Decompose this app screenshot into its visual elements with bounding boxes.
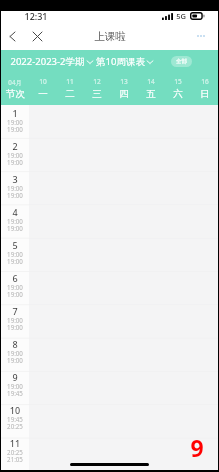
staticText: 14 (147, 77, 155, 86)
staticText: 20:25 21:05 (1, 448, 29, 463)
staticText: 9 (190, 432, 204, 463)
button[interactable]: 11 (1, 435, 29, 468)
staticText: 4 (1, 206, 29, 218)
button[interactable]: 13 (110, 72, 137, 105)
button[interactable]: 5 (1, 237, 29, 270)
staticText: 四 (119, 88, 129, 100)
button[interactable]: 11 (56, 72, 83, 105)
staticText: 3 (1, 173, 29, 185)
staticText: 第10周课表 (96, 55, 145, 68)
staticText: 8 (1, 338, 29, 350)
button[interactable]: 12 (83, 72, 110, 105)
staticText: 19:00 19:00 (1, 349, 29, 364)
button[interactable]: 全部 (171, 56, 192, 67)
staticText: 全部 (176, 58, 187, 65)
staticText: 5 (1, 239, 29, 251)
button[interactable]: 16 (191, 72, 218, 105)
staticText: 16 (201, 77, 209, 86)
staticText: 节次 (6, 88, 25, 100)
staticText: 二 (65, 88, 75, 100)
staticText: 19:00 19:00 (1, 118, 29, 133)
staticText: 19:45 20:25 (1, 415, 29, 430)
staticText: 19:00 19:00 (1, 283, 29, 298)
staticText: 1 (1, 107, 29, 119)
staticText: 上课啦 (94, 30, 126, 43)
staticText: 19:00 19:45 (1, 382, 29, 397)
button[interactable]: 7 (1, 303, 29, 336)
button[interactable]: More options (193, 28, 209, 44)
staticText: 2 (1, 140, 29, 152)
button[interactable]: 4 (1, 204, 29, 237)
staticText: 2022-2023-2学期 (10, 55, 85, 68)
staticText: 9 (1, 371, 29, 383)
staticText: 6 (1, 272, 29, 284)
staticText: 7 (1, 305, 29, 317)
button[interactable]: 1 (1, 105, 29, 138)
staticText: 11 (1, 437, 29, 449)
button[interactable]: 3 (1, 171, 29, 204)
staticText: 19:00 19:00 (1, 316, 29, 331)
staticText: 12 (93, 77, 101, 86)
staticText: 19:00 19:00 (1, 250, 29, 265)
staticText: 19:00 19:00 (1, 184, 29, 199)
button[interactable]: 2022-2023-2学期 (10, 55, 93, 68)
button[interactable]: 14 (137, 72, 164, 105)
staticText: 19:00 19:00 (1, 217, 29, 232)
button[interactable]: 9 (1, 369, 29, 402)
button[interactable]: 6 (1, 270, 29, 303)
staticText: 11 (66, 77, 74, 86)
button[interactable]: 15 (164, 72, 191, 105)
staticText: 19:00 19:00 (1, 151, 29, 166)
staticText: 三 (92, 88, 102, 100)
button[interactable]: 2 (1, 138, 29, 171)
staticText: 04月 (8, 78, 22, 86)
staticText: 13 (120, 77, 128, 86)
button[interactable]: 第10周课表 (96, 55, 153, 68)
button[interactable]: 10 (29, 72, 56, 105)
staticText: 六 (173, 88, 183, 100)
button[interactable]: 8 (1, 336, 29, 369)
staticText: 一 (38, 88, 48, 100)
button[interactable]: 10 (1, 402, 29, 435)
staticText: 15 (174, 77, 182, 86)
staticText: 12:31 (24, 10, 48, 21)
button[interactable]: Close (28, 27, 46, 45)
staticText: 五 (146, 88, 156, 100)
staticText: 10 (1, 404, 29, 416)
staticText: 日 (200, 88, 210, 100)
staticText: 10 (39, 77, 47, 86)
button[interactable]: Back (3, 27, 21, 45)
staticText: 5G (176, 11, 186, 21)
